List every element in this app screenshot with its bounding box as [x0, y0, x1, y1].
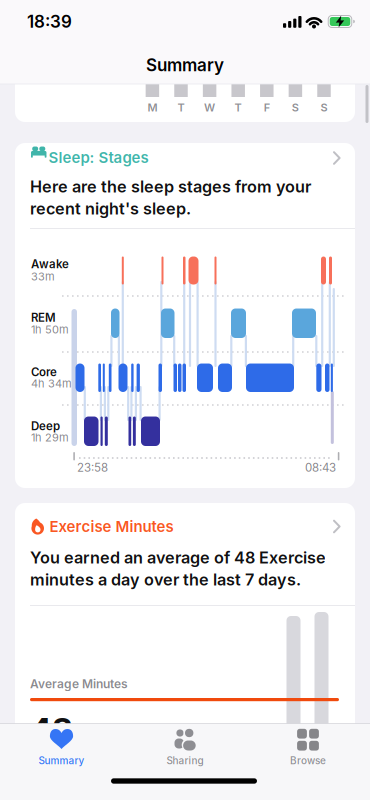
staticText: Exercise Minutes	[49, 518, 173, 535]
button[interactable]: Summary	[16, 723, 106, 771]
button[interactable]: Sleep: Stages	[15, 143, 355, 488]
staticText: Sharing	[166, 755, 203, 766]
staticText: 4h 34m	[31, 377, 72, 390]
staticText: Here are the sleep stages from your	[30, 177, 311, 196]
staticText: T	[177, 101, 184, 114]
staticText: 1h 50m	[31, 323, 69, 336]
staticText: Average Minutes	[30, 677, 128, 691]
staticText: S	[320, 101, 327, 114]
staticText: Browse	[290, 755, 326, 766]
button[interactable]: Browse	[263, 723, 353, 771]
button[interactable]: Exercise Minutes	[15, 503, 355, 800]
staticText: S	[292, 101, 299, 114]
button[interactable]: Sharing	[140, 723, 230, 771]
staticText: W	[204, 101, 215, 114]
staticText: 18:39	[27, 11, 72, 32]
staticText: Core	[31, 365, 57, 379]
staticText: Sleep: Stages	[48, 149, 148, 166]
staticText: Deep	[31, 419, 60, 433]
staticText: Awake	[31, 257, 69, 271]
staticText: M	[147, 101, 157, 114]
staticText: 33m	[31, 270, 55, 283]
staticText: recent night's sleep.	[30, 199, 191, 218]
staticText: 48	[30, 710, 73, 749]
staticText: F	[264, 101, 270, 114]
staticText: 08:43	[305, 461, 336, 474]
staticText: Summary	[38, 755, 84, 766]
staticText: 23:58	[77, 461, 108, 474]
staticText: REM	[31, 311, 56, 324]
staticText: T	[235, 101, 242, 114]
staticText: minutes a day over the last 7 days.	[30, 570, 301, 589]
staticText: You earned an average of 48 Exercise	[30, 548, 326, 567]
staticText: 1h 29m	[31, 431, 69, 444]
staticText: Summary	[146, 55, 224, 75]
